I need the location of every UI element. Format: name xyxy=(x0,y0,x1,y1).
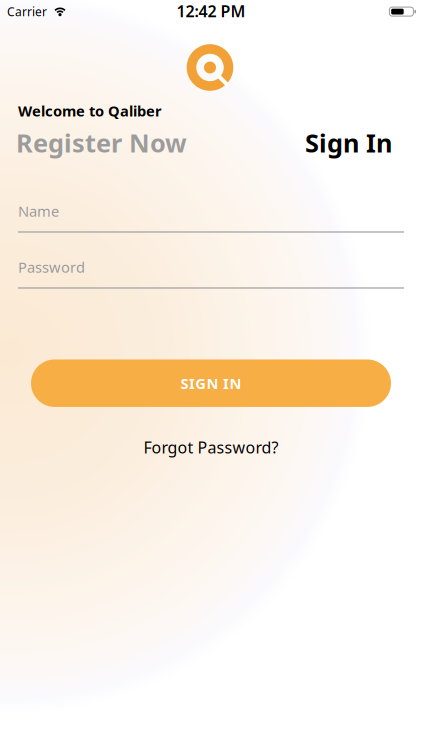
staticText: SIGN IN xyxy=(181,373,241,393)
button[interactable]: SIGN IN xyxy=(31,359,391,407)
staticText: Name xyxy=(18,201,59,221)
staticText: Carrier xyxy=(7,4,47,19)
button[interactable]: Register Now xyxy=(16,126,187,159)
staticText: Password xyxy=(18,257,85,277)
staticText: Welcome to Qaliber xyxy=(18,101,162,120)
button[interactable]: Sign In xyxy=(305,126,392,159)
button[interactable]: Forgot Password? xyxy=(143,437,278,458)
staticText: Sign In xyxy=(305,126,392,159)
button[interactable]: Name xyxy=(0,201,422,233)
button[interactable]: Password xyxy=(0,257,422,289)
staticText: Forgot Password? xyxy=(143,437,278,458)
staticText: 12:42 PM xyxy=(176,0,245,22)
staticText: Register Now xyxy=(16,126,187,159)
